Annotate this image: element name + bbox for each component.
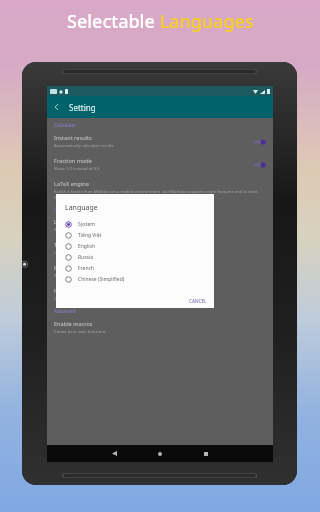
button[interactable]: Toggle Instant results bbox=[252, 138, 266, 146]
button[interactable]: Font bbox=[47, 260, 273, 283]
button[interactable]: Tiếng Việt bbox=[56, 230, 214, 241]
button[interactable]: Back bbox=[51, 101, 63, 113]
button[interactable]: Instant results bbox=[47, 130, 273, 153]
staticText: Chinese (Simplified) bbox=[78, 276, 125, 283]
button[interactable]: Chinese (Simplified) bbox=[56, 274, 214, 285]
button[interactable]: Toggle Fraction mode bbox=[252, 161, 266, 169]
staticText: Calculator bbox=[54, 122, 77, 128]
staticText: Enable macros bbox=[54, 320, 93, 328]
button[interactable]: Language bbox=[47, 214, 273, 237]
staticText: Light bbox=[54, 250, 64, 256]
staticText: Tiếng Việt bbox=[78, 232, 102, 239]
staticText: Language bbox=[65, 203, 98, 213]
button[interactable]: Home bbox=[148, 445, 172, 462]
button[interactable]: Back bbox=[102, 445, 126, 462]
staticText: User Interface bbox=[54, 206, 86, 212]
staticText: Immersive mode bbox=[54, 296, 88, 302]
staticText: English bbox=[78, 243, 96, 250]
staticText: System bbox=[78, 221, 95, 228]
staticText: Automatically calculate results bbox=[54, 143, 114, 149]
staticText: Fraction mode bbox=[54, 157, 92, 165]
button[interactable]: English bbox=[56, 241, 214, 252]
button[interactable]: Enable macros bbox=[47, 316, 273, 339]
staticText: Roboto Light bbox=[54, 273, 80, 279]
button[interactable]: French bbox=[56, 263, 214, 274]
staticText: Hide status bar bbox=[54, 287, 94, 295]
staticText: Advanced bbox=[54, 308, 76, 314]
button[interactable]: CANCEL bbox=[186, 297, 210, 305]
staticText: Setting bbox=[69, 102, 96, 113]
staticText: Language bbox=[54, 218, 81, 226]
staticText: Instant results bbox=[54, 134, 92, 142]
staticText: French bbox=[78, 265, 94, 272]
staticText: System bbox=[54, 227, 69, 233]
button[interactable]: LaTeX engine bbox=[47, 176, 273, 204]
staticText: Create your own functions bbox=[54, 329, 106, 335]
staticText: LaTeX engine bbox=[54, 180, 89, 188]
button[interactable]: Fraction mode bbox=[47, 153, 273, 176]
button[interactable]: System bbox=[56, 219, 214, 230]
button[interactable]: Theme bbox=[47, 237, 273, 260]
staticText: KaTeX is faster than MathJax on a mobile… bbox=[54, 189, 266, 200]
button[interactable]: Recent apps bbox=[194, 445, 218, 462]
staticText: Show 1/2 instead of 0.5 bbox=[54, 166, 100, 172]
staticText: Theme bbox=[54, 241, 73, 249]
staticText: Russia bbox=[78, 254, 94, 261]
staticText: Font bbox=[54, 264, 66, 272]
staticText: Selectable Languages bbox=[67, 9, 254, 34]
button[interactable]: Russia bbox=[56, 252, 214, 263]
button[interactable]: Hide status bar bbox=[47, 283, 273, 306]
staticText: CANCEL bbox=[189, 298, 207, 304]
